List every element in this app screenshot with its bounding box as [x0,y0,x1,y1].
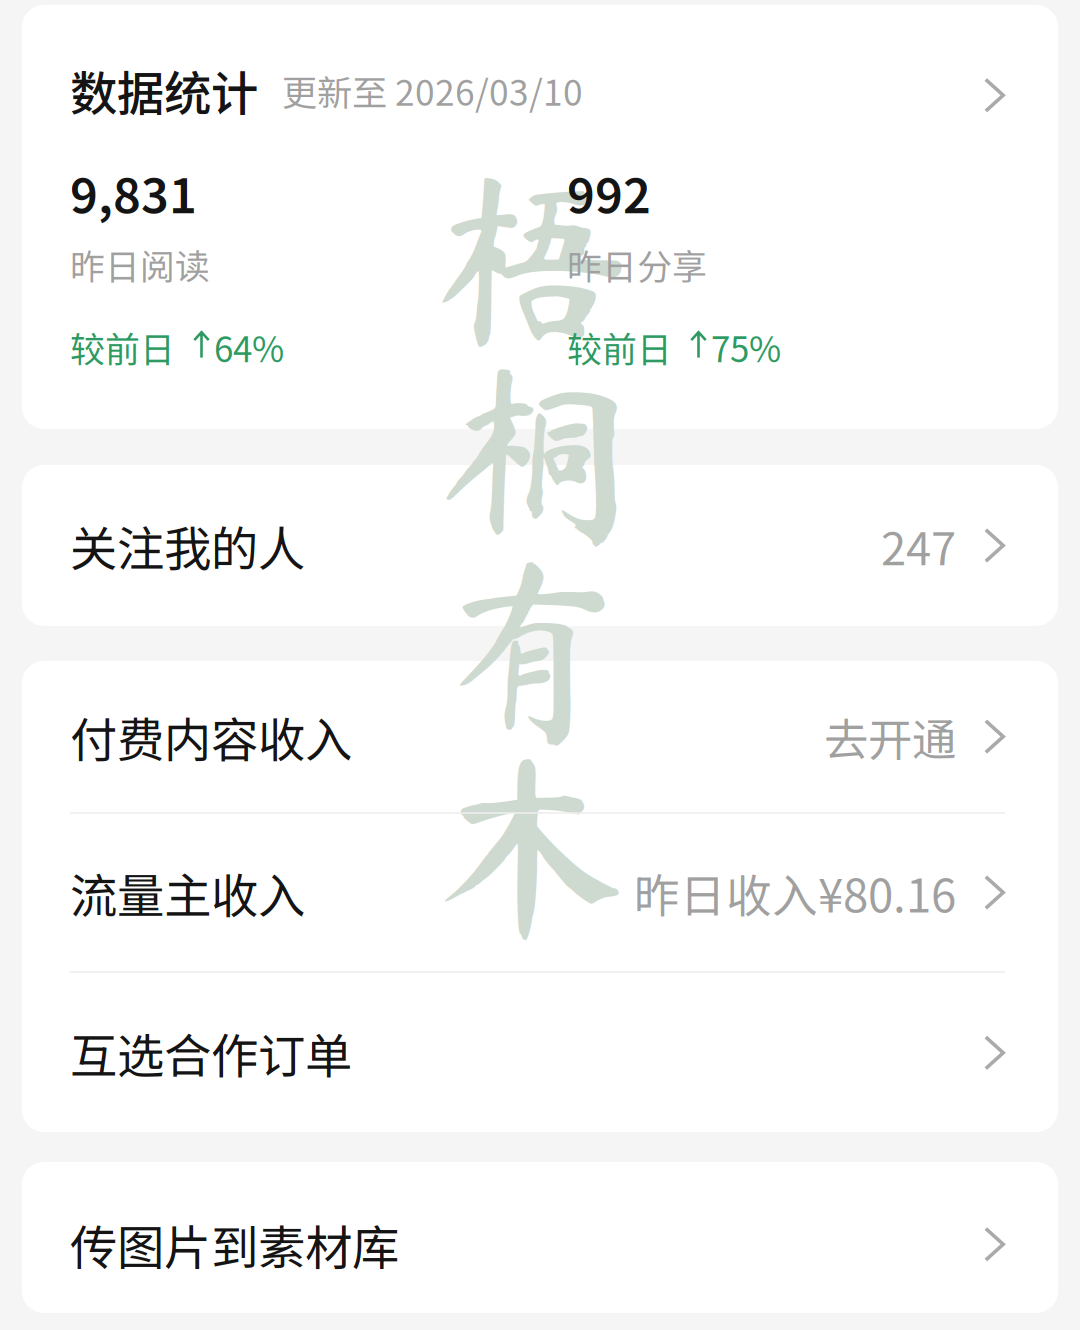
staticText: 付费内容收入 [70,702,352,771]
staticText: 传图片到素材库 [70,1210,399,1278]
staticText: 木 [434,747,629,942]
button[interactable]: 流量主收入 [22,814,1058,971]
staticText: 64% [214,322,284,372]
staticText: 9,831 [70,157,197,227]
staticText: 昨日阅读 [70,239,210,290]
staticText: 互选合作订单 [70,1018,352,1087]
staticText: 去开通 [824,704,956,769]
staticText: 数据统计 [70,56,258,124]
button[interactable]: 关注我的人 [22,465,1058,626]
staticText: 昨日分享 [567,239,707,290]
button[interactable]: 传图片到素材库 [22,1163,1058,1314]
staticText: 75% [711,322,781,372]
button[interactable]: 互选合作订单 [22,973,1058,1133]
staticText: 992 [567,157,651,227]
button[interactable]: 付费内容收入 [22,661,1058,812]
staticText: 桐 [434,356,629,550]
staticText: 梧 [434,160,629,355]
staticText: 247 [881,513,956,578]
staticText: 有 [434,551,629,746]
staticText: 较前日 [70,322,175,372]
staticText: 更新至 2026/03/10 [282,65,583,116]
staticText: 流量主收入 [70,858,305,927]
staticText: 昨日收入¥80.16 [634,859,956,925]
staticText: 较前日 [567,322,672,372]
button[interactable]: 数据统计 [22,5,1058,429]
staticText: 关注我的人 [70,511,305,580]
